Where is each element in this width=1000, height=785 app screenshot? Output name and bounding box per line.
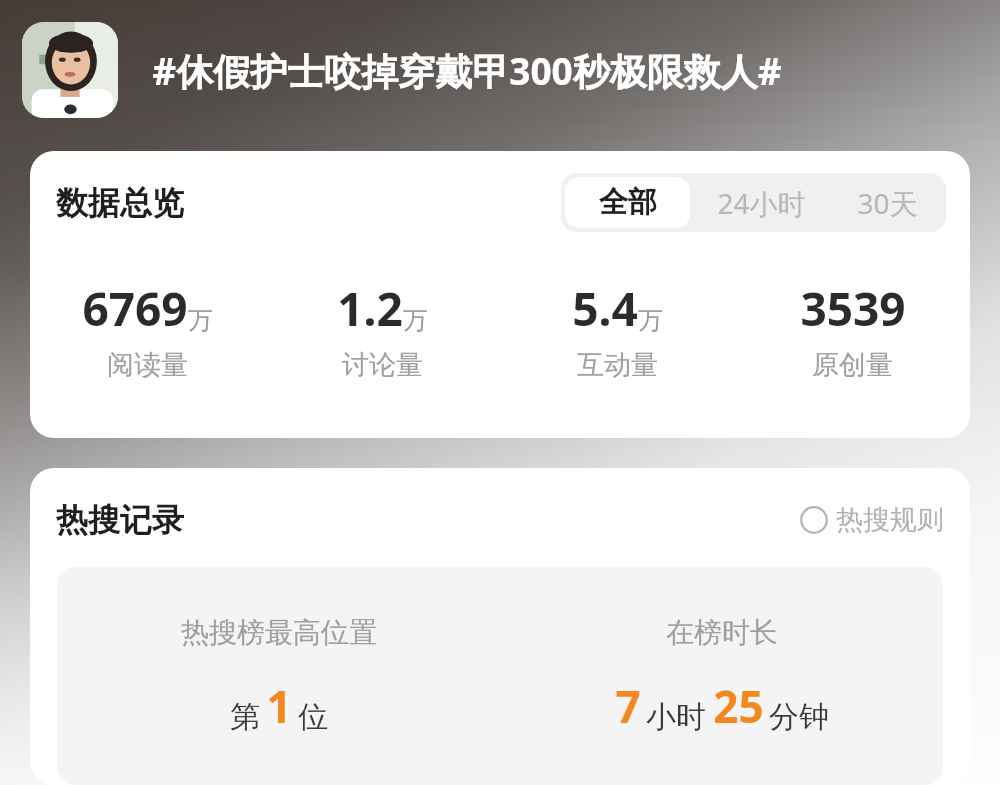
- button[interactable]: 24小时: [694, 173, 828, 232]
- staticText: 小时: [646, 698, 706, 736]
- staticText: 热搜规则: [836, 503, 944, 537]
- staticText: 原创量: [812, 348, 893, 382]
- staticText: 讨论量: [342, 348, 423, 382]
- button[interactable]: 30天: [828, 173, 946, 232]
- button[interactable]: User avatar: [22, 22, 118, 118]
- staticText: 5.4: [572, 277, 638, 340]
- button[interactable]: 1.2: [265, 277, 500, 382]
- staticText: 位: [298, 698, 328, 736]
- staticText: 数据总览: [56, 183, 184, 223]
- staticText: 30天: [857, 184, 918, 222]
- staticText: 3539: [800, 277, 906, 340]
- button[interactable]: 6769: [30, 277, 265, 382]
- staticText: 阅读量: [107, 348, 188, 382]
- staticText: 1: [266, 676, 292, 736]
- button[interactable]: 全部: [565, 177, 690, 228]
- staticText: 7: [615, 676, 641, 736]
- staticText: 万: [188, 305, 213, 336]
- staticText: 6769: [82, 277, 188, 340]
- button[interactable]: 3539: [735, 277, 970, 382]
- staticText: 热搜记录: [56, 500, 184, 540]
- staticText: #休假护士咬掉穿戴甲300秒极限救人#: [152, 45, 782, 96]
- staticText: 全部: [599, 184, 657, 221]
- staticText: 分钟: [769, 698, 829, 736]
- staticText: 1.2: [337, 277, 403, 340]
- staticText: 25: [713, 676, 764, 736]
- staticText: 24小时: [717, 184, 806, 222]
- staticText: 热搜榜最高位置: [181, 615, 377, 650]
- staticText: 互动量: [577, 348, 658, 382]
- staticText: 万: [403, 305, 428, 336]
- staticText: 在榜时长: [666, 615, 778, 650]
- button[interactable]: 热搜规则: [800, 503, 944, 537]
- button[interactable]: 5.4: [500, 277, 735, 382]
- staticText: 第: [230, 698, 260, 736]
- staticText: 万: [638, 305, 663, 336]
